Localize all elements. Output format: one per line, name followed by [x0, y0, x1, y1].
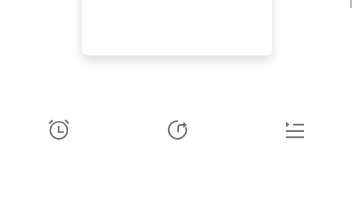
- button[interactable]: Alarm: [0, 110, 118, 150]
- button[interactable]: Timer: [118, 110, 236, 150]
- button[interactable]: Playlist: [236, 110, 354, 150]
